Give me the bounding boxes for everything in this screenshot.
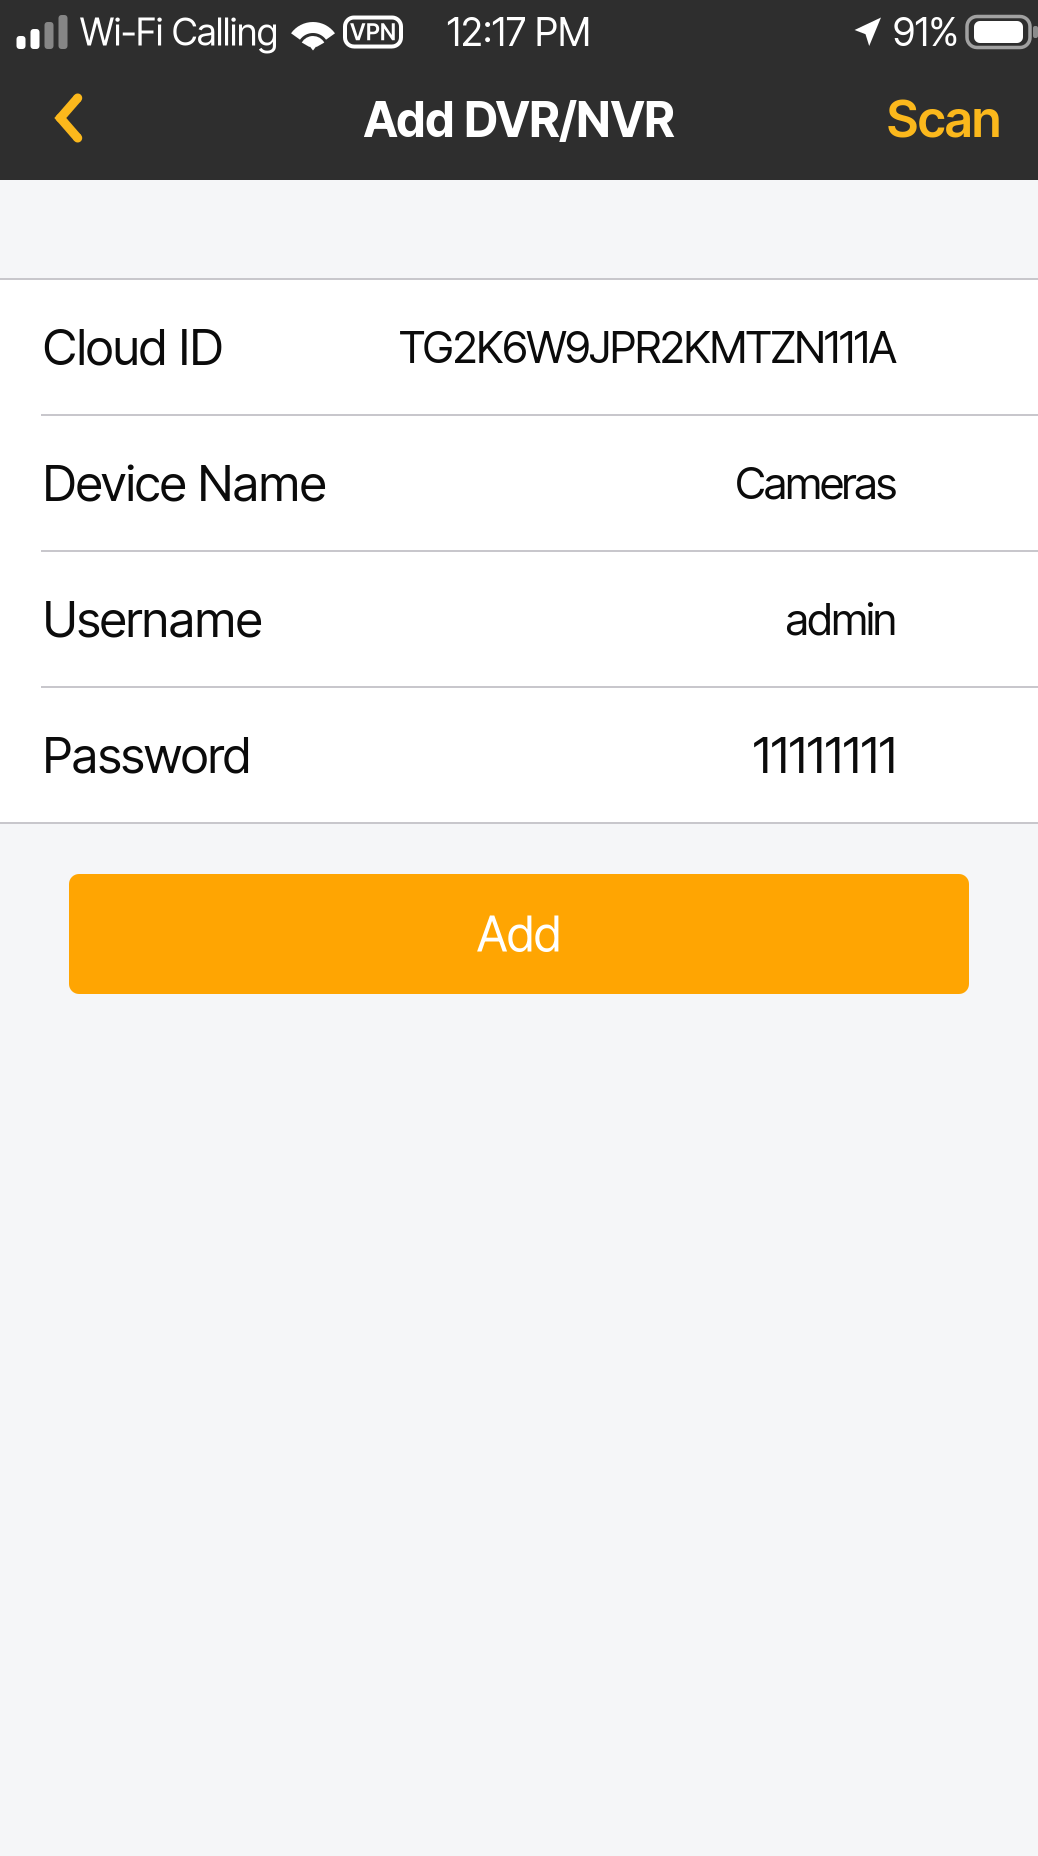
staticText: Scan <box>887 88 1001 149</box>
staticText: Device Name <box>43 453 326 513</box>
button[interactable]: Cloud ID <box>0 280 1038 414</box>
button[interactable]: Username <box>0 552 1038 686</box>
button[interactable]: Password <box>0 688 1038 822</box>
staticText: Add DVR/NVR <box>363 90 674 149</box>
staticText: 91% <box>893 9 959 55</box>
staticText: 12:17 PM <box>447 9 591 55</box>
staticText: Password <box>43 725 251 785</box>
staticText: TG2K6W9JPR2KMTZN111A <box>399 320 897 374</box>
button[interactable]: Device Name <box>0 416 1038 550</box>
staticText: Add <box>477 905 561 963</box>
button[interactable]: Scan <box>867 63 1021 179</box>
staticText: Cameras <box>735 456 897 510</box>
staticText: Username <box>43 589 262 649</box>
staticText: Cloud ID <box>43 317 223 377</box>
staticText: VPN <box>350 18 396 46</box>
staticText: 11111111 <box>753 725 897 785</box>
button[interactable]: Add <box>69 874 969 994</box>
button[interactable]: Back <box>22 63 116 179</box>
staticText: admin <box>786 592 897 646</box>
staticText: Wi-Fi Calling <box>80 9 278 55</box>
